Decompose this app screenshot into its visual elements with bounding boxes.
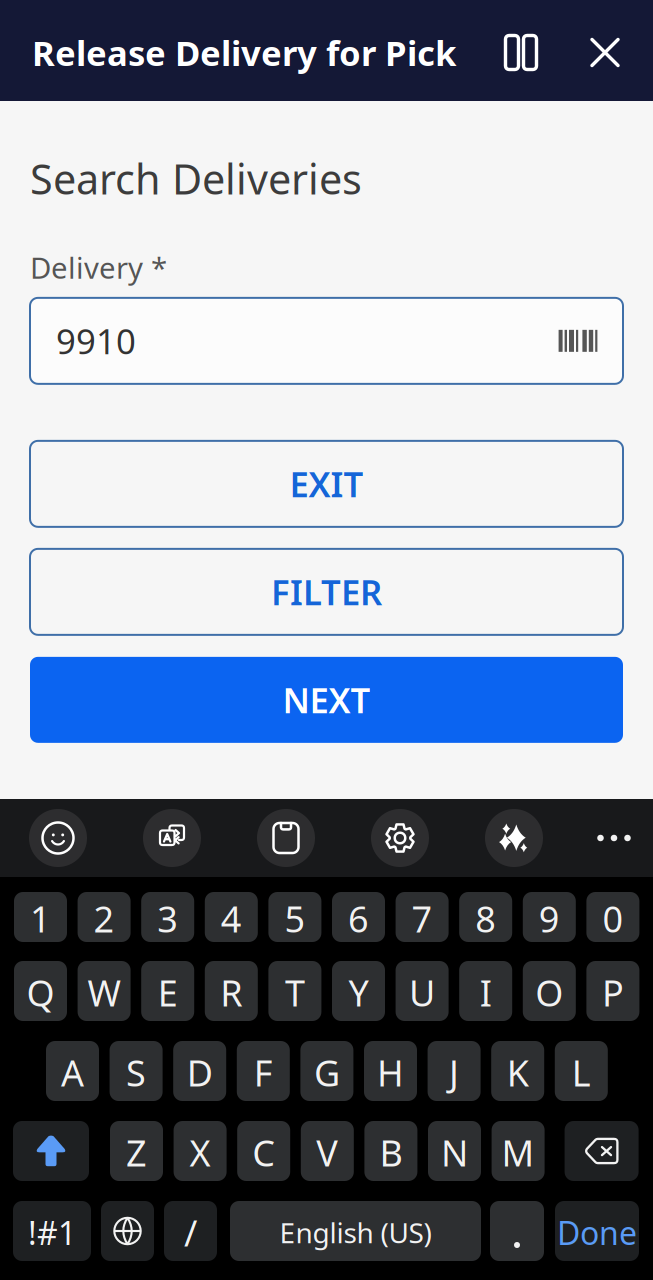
staticText: 4 [221,895,242,942]
button[interactable]: 4 [205,892,258,942]
staticText: E [158,969,178,1016]
button[interactable]: FILTER [30,549,623,635]
button[interactable]: 2 [78,892,131,942]
button[interactable]: 3 [141,892,194,942]
staticText: / [184,1209,197,1256]
staticText: B [379,1129,402,1176]
staticText: U [409,969,435,1016]
button[interactable]: 1 [14,892,67,942]
button[interactable]: EXIT [30,441,623,527]
button[interactable]: X [174,1121,227,1181]
button[interactable]: 5 [268,892,321,942]
button[interactable]: A [46,1041,99,1101]
staticText: F [254,1049,273,1096]
button[interactable]: B [364,1121,417,1181]
button[interactable]: G [300,1041,353,1101]
button[interactable]: E [141,961,194,1021]
button[interactable]: C [237,1121,290,1181]
button[interactable]: Backspace [565,1121,639,1181]
staticText: 2 [94,895,115,942]
button[interactable]: !#1 [13,1201,91,1261]
staticText: 3 [157,895,178,942]
button[interactable]: D [173,1041,226,1101]
button[interactable]: Shift [13,1121,89,1181]
staticText: J [449,1049,459,1096]
button[interactable]: P [586,961,639,1021]
button[interactable]: 8 [459,892,512,942]
staticText: X [190,1129,211,1176]
button[interactable]: N [428,1121,481,1181]
staticText: S [126,1049,146,1096]
staticText: Release Delivery for Pick [32,29,456,75]
staticText: Search Deliveries [30,151,362,206]
staticText: M [502,1129,535,1176]
button[interactable]: R [205,961,258,1021]
button[interactable]: T [268,961,321,1021]
button[interactable]: L [555,1041,608,1101]
button[interactable]: I [459,961,512,1021]
staticText: Y [348,969,368,1016]
staticText: W [88,969,121,1016]
button[interactable]: Y [332,961,385,1021]
button[interactable]: J [428,1041,481,1101]
button[interactable]: S [110,1041,163,1101]
button[interactable]: Close [583,30,627,74]
button[interactable]: Split view [495,26,547,78]
staticText: 9910 [56,318,136,364]
staticText: Q [26,969,54,1016]
button[interactable]: More [585,809,643,867]
staticText: 7 [412,895,433,942]
staticText: NEXT [282,677,370,723]
button[interactable]: F [237,1041,290,1101]
button[interactable]: Keyboard settings [371,809,429,867]
staticText: !#1 [28,1211,76,1254]
staticText: H [377,1049,404,1096]
button[interactable]: H [364,1041,417,1101]
button[interactable]: W [78,961,131,1021]
staticText: 1 [30,895,51,942]
button[interactable]: K [491,1041,544,1101]
staticText: G [314,1049,340,1096]
button[interactable]: English (US) [230,1201,481,1261]
staticText: 5 [284,895,305,942]
staticText: 6 [348,895,369,942]
button[interactable]: Q [14,961,67,1021]
staticText: English (US) [279,1214,431,1251]
button[interactable]: Translate [143,809,201,867]
button[interactable]: Clipboard [257,809,315,867]
button[interactable]: NEXT [30,657,623,743]
button[interactable]: Next keyboard [101,1201,154,1261]
staticText: 0 [602,895,623,942]
staticText: I [480,969,492,1016]
button[interactable]: O [523,961,576,1021]
button[interactable]: 6 [332,892,385,942]
staticText: 9 [539,895,560,942]
button[interactable]: Done [555,1201,639,1261]
button[interactable]: Scan barcode [555,321,601,361]
staticText: Done [557,1211,637,1254]
staticText: L [572,1049,591,1096]
button[interactable]: M [492,1121,545,1181]
button[interactable]: / [164,1201,217,1261]
button[interactable]: Emoji [29,809,87,867]
button[interactable]: V [301,1121,354,1181]
button[interactable]: Z [110,1121,163,1181]
staticText: D [187,1049,213,1096]
staticText: K [507,1049,529,1096]
staticText: V [316,1129,338,1176]
staticText: O [535,969,563,1016]
staticText: P [602,969,624,1016]
button[interactable]: AI writing tools [485,809,543,867]
staticText: C [252,1129,275,1176]
button[interactable]: 7 [396,892,449,942]
staticText: 8 [475,895,496,942]
staticText: N [441,1129,468,1176]
button[interactable]: 9 [523,892,576,942]
staticText: FILTER [271,569,382,615]
staticText: Z [126,1129,147,1176]
staticText: Delivery * [30,248,167,287]
button[interactable]: 0 [586,892,639,942]
button[interactable]: Period [490,1201,544,1261]
staticText: EXIT [289,461,363,507]
button[interactable]: U [396,961,449,1021]
